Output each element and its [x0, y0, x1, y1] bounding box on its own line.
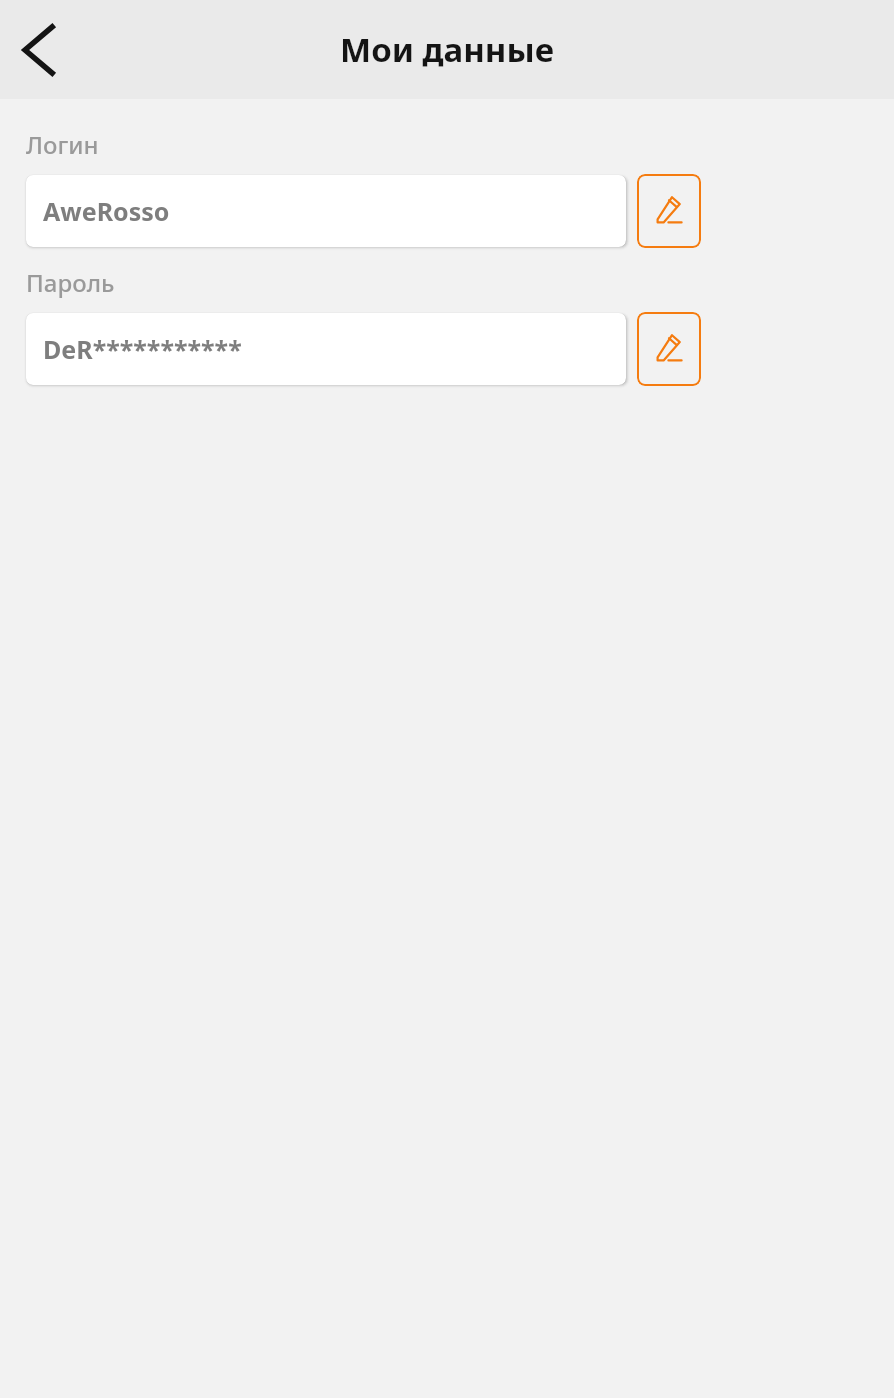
button[interactable]: Edit password: [637, 312, 701, 386]
button[interactable]: Back: [8, 18, 72, 82]
staticText: AweRosso: [43, 194, 170, 228]
button[interactable]: DeR***********: [26, 313, 626, 385]
button[interactable]: AweRosso: [26, 175, 626, 247]
button[interactable]: Edit login: [637, 174, 701, 248]
staticText: Логин: [26, 128, 99, 161]
staticText: DeR***********: [43, 332, 242, 366]
staticText: Мои данные: [0, 27, 894, 72]
staticText: Пароль: [26, 266, 115, 299]
